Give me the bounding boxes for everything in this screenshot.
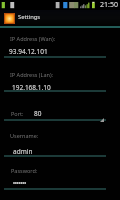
staticText: 192.168.1.10 [12,83,51,92]
button[interactable] [4,107,106,122]
other: Edit port [100,118,104,122]
staticText: Username: [10,132,39,139]
staticText: IP Address (Wan): [10,35,56,42]
staticText: IP Address (Lan): [10,71,54,78]
button[interactable] [4,32,106,59]
staticText: 93.94.12.101 [9,47,48,56]
staticText: 21:50 [100,0,118,10]
button[interactable] [4,129,106,158]
staticText: 80 [34,109,42,118]
staticText: Settings [18,13,41,21]
staticText: admin [13,147,33,156]
button[interactable] [4,68,106,93]
staticText: Port: [11,110,24,117]
button[interactable] [4,164,106,192]
staticText: Password: [11,167,38,174]
